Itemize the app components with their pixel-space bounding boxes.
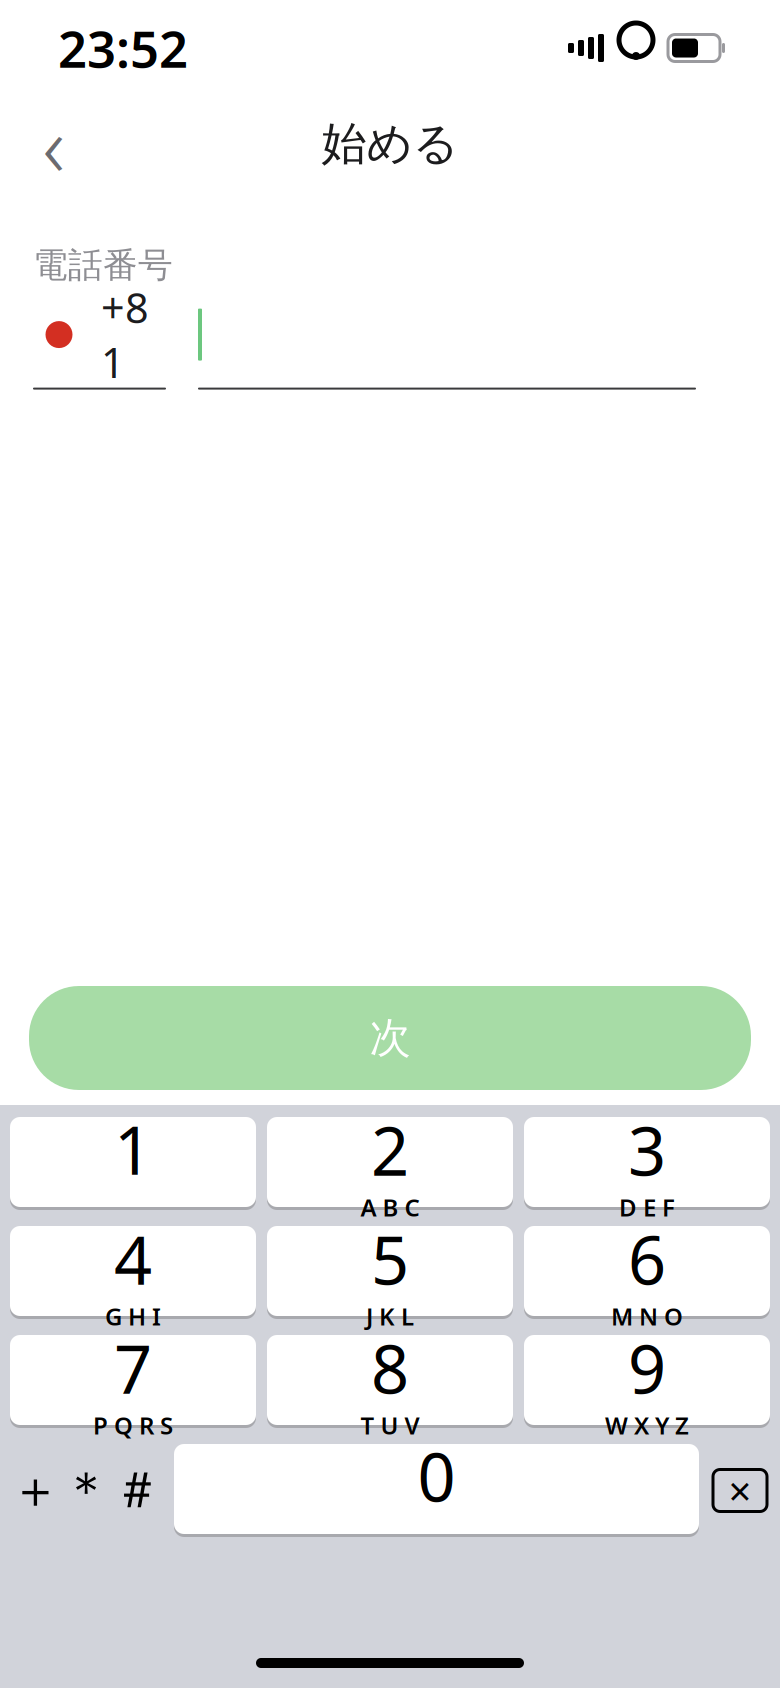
staticText: 3 (628, 1106, 666, 1194)
staticText: 次 (369, 1013, 410, 1063)
staticText: ‹ (42, 87, 65, 201)
staticText: 4 (114, 1215, 152, 1303)
staticText: P Q R S (93, 1409, 173, 1441)
staticText: 始める (321, 116, 458, 172)
staticText: G H I (105, 1300, 161, 1332)
staticText: 電話番号 (33, 244, 173, 287)
staticText: J K L (366, 1300, 414, 1332)
button[interactable]: 4 (10, 1226, 256, 1319)
staticText: 2 (371, 1106, 409, 1194)
staticText: 9 (628, 1324, 666, 1412)
staticText: ＋＊＃ (10, 1459, 163, 1522)
button[interactable]: Country code +81 (33, 305, 166, 390)
button[interactable]: 7 (10, 1335, 256, 1428)
staticText: W X Y Z (605, 1409, 689, 1441)
button[interactable]: Plus, asterisk, pound (10, 1444, 163, 1537)
button[interactable]: 3 (524, 1117, 770, 1210)
staticText: 0 (417, 1432, 455, 1520)
staticText: +81 (101, 280, 149, 389)
button[interactable]: 次 (0, 986, 780, 1090)
staticText: T U V (360, 1409, 419, 1441)
staticText: 7 (114, 1324, 152, 1412)
staticText: M N O (611, 1300, 683, 1332)
button[interactable]: Delete (710, 1444, 770, 1537)
staticText: 23:52 (58, 14, 188, 82)
staticText: 8 (371, 1324, 409, 1412)
staticText: A B C (360, 1191, 419, 1223)
button[interactable]: 1 (10, 1117, 256, 1210)
staticText: × (728, 1464, 751, 1517)
button[interactable]: 6 (524, 1226, 770, 1319)
button[interactable]: 0 (174, 1444, 699, 1537)
button[interactable]: Back (14, 104, 94, 184)
button[interactable]: 9 (524, 1335, 770, 1428)
button[interactable]: 5 (267, 1226, 513, 1319)
button[interactable]: 8 (267, 1335, 513, 1428)
staticText: D E F (619, 1191, 675, 1223)
staticText: 5 (371, 1215, 409, 1303)
staticText: 6 (628, 1215, 666, 1303)
button[interactable]: 2 (267, 1117, 513, 1210)
staticText: 1 (114, 1105, 152, 1193)
